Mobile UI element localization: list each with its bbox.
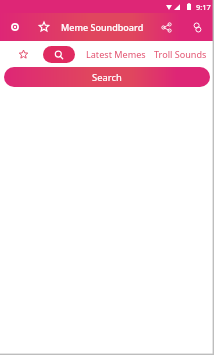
staticText: Search <box>92 71 122 84</box>
button[interactable]: Latest Memes <box>86 48 146 60</box>
staticText: Meme Soundboard <box>61 21 144 33</box>
button[interactable]: Favorites <box>29 15 59 39</box>
button[interactable]: Search tab <box>43 46 75 63</box>
staticText: 9:17 <box>196 2 211 12</box>
button[interactable]: Settings <box>0 15 29 39</box>
button[interactable]: Link <box>185 15 210 39</box>
button[interactable]: Troll Sounds <box>154 48 207 60</box>
button[interactable]: Search <box>4 67 210 87</box>
button[interactable]: Favorites tab <box>14 44 33 64</box>
button[interactable]: Share <box>154 15 179 39</box>
